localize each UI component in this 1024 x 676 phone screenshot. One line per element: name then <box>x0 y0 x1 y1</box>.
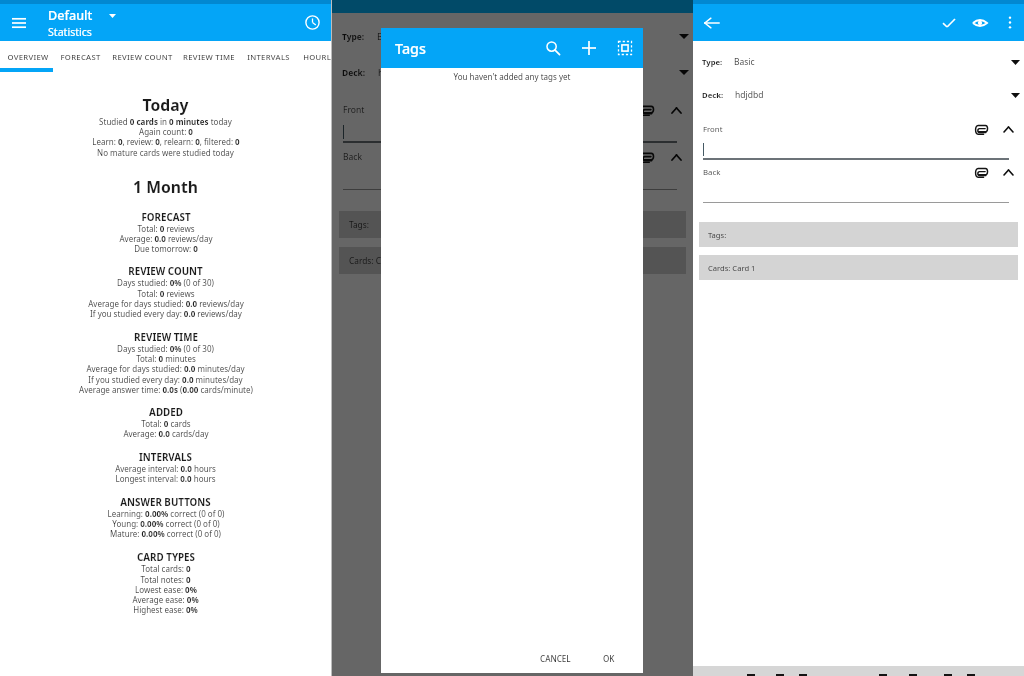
staticText: ANSWER BUTTONS <box>120 496 211 509</box>
staticText: Statistics <box>48 25 92 39</box>
button[interactable]: Attach media to Front <box>970 121 992 137</box>
staticText: hdjdbd <box>378 66 410 79</box>
staticText: Back <box>703 167 721 178</box>
staticText: hdjdbd <box>735 89 764 101</box>
staticText: 1 Month <box>133 176 198 197</box>
button[interactable] <box>332 125 693 141</box>
button[interactable]: FORECAST <box>55 41 105 72</box>
staticText: Due tomorrow: 0 <box>134 243 198 254</box>
button[interactable]: Deck: <box>332 61 693 83</box>
staticText: Total: 0 reviews <box>137 223 195 234</box>
staticText: Total: 0 reviews <box>137 288 195 299</box>
staticText: FORECAST <box>141 211 191 224</box>
button[interactable]: Collapse Back field <box>664 148 688 166</box>
staticText: Default <box>48 7 93 24</box>
button[interactable]: Type: <box>332 25 693 47</box>
staticText: Front <box>343 104 365 116</box>
staticText: Basic <box>377 30 400 43</box>
staticText: Basic <box>734 56 755 68</box>
staticText: Average answer time: 0.0s (0.00 cards/mi… <box>79 384 253 395</box>
button[interactable]: Deck: <box>693 85 1024 105</box>
button[interactable]: Type: <box>693 52 1024 72</box>
staticText: Young: 0.00% correct (0 of 0) <box>112 518 220 529</box>
staticText: Total: 0 minutes <box>136 353 196 364</box>
staticText: Average for days studied: 0.0 minutes/da… <box>86 363 245 374</box>
staticText: Days studied: 0% (0 of 30) <box>117 277 214 288</box>
staticText: Learning: 0.00% correct (0 of 0) <box>107 508 225 519</box>
staticText: Highest ease: 0% <box>133 604 198 615</box>
button[interactable]: Collapse Back field <box>997 164 1019 180</box>
staticText: OK <box>603 653 615 664</box>
staticText: Cards: Card 1 <box>708 263 756 273</box>
button[interactable]: REVIEW TIME <box>180 41 237 72</box>
staticText: Today <box>142 94 189 115</box>
button[interactable]: Attach media to Back <box>970 164 992 180</box>
button[interactable]: REVIEW COUNT <box>105 41 180 72</box>
button[interactable]: Cards: Card 1 <box>699 255 1018 280</box>
button[interactable]: Collapse Front field <box>997 121 1019 137</box>
staticText: Average interval: 0.0 hours <box>115 463 216 474</box>
staticText: Mature: 0.00% correct (0 of 0) <box>110 528 221 539</box>
staticText: Lowest ease: 0% <box>135 584 197 595</box>
staticText: Type: <box>342 31 365 42</box>
staticText: Average for days studied: 0.0 reviews/da… <box>88 298 244 309</box>
button[interactable]: Menu <box>0 4 37 41</box>
staticText: Average: 0.0 reviews/day <box>119 233 213 244</box>
staticText: Total notes: 0 <box>140 574 191 585</box>
staticText: HOURLY <box>303 52 331 62</box>
staticText: Deck: <box>342 67 366 78</box>
button[interactable]: Save note <box>933 7 964 38</box>
staticText: Learn: 0, review: 0, relearn: 0, filtere… <box>92 136 240 147</box>
staticText: Tags: <box>708 230 727 240</box>
staticText: CARD TYPES <box>137 551 195 564</box>
staticText: Again count: 0 <box>139 126 193 137</box>
staticText: Longest interval: 0.0 hours <box>115 473 216 484</box>
button[interactable]: Select all <box>607 30 643 66</box>
button[interactable]: Preview card <box>964 7 995 38</box>
staticText: Tags: <box>349 219 369 230</box>
staticText: Days studied: 0% (0 of 30) <box>117 343 214 354</box>
staticText: Average ease: 0% <box>132 594 199 605</box>
staticText: ADDED <box>149 406 183 419</box>
button[interactable]: Search tags <box>535 30 571 66</box>
staticText: Total cards: 0 <box>141 563 191 574</box>
button[interactable]: Cards: Card 1 <box>339 247 686 274</box>
staticText: REVIEW TIME <box>183 52 235 62</box>
staticText: Average: 0.0 cards/day <box>123 428 209 439</box>
button[interactable]: Tags: <box>699 222 1018 247</box>
staticText: No mature cards were studied today <box>97 147 234 158</box>
button[interactable]: Tags: <box>339 211 686 238</box>
staticText: CANCEL <box>540 653 571 664</box>
staticText: OVERVIEW <box>7 52 49 62</box>
button[interactable]: More options <box>995 8 1024 37</box>
staticText: Tags <box>395 39 426 58</box>
staticText: REVIEW TIME <box>134 331 198 344</box>
staticText: FORECAST <box>60 52 101 62</box>
staticText: REVIEW COUNT <box>112 52 173 62</box>
button[interactable]: HOURLY <box>303 41 331 72</box>
button[interactable] <box>693 143 1024 158</box>
staticText: Cards: Card 1 <box>349 255 401 266</box>
staticText: INTERVALS <box>139 451 192 464</box>
button[interactable]: OK <box>594 647 624 670</box>
button[interactable]: INTERVALS <box>237 41 300 72</box>
button[interactable]: Collapse Front field <box>664 101 688 119</box>
button[interactable]: Study time history <box>294 4 331 41</box>
staticText: INTERVALS <box>247 52 290 62</box>
button[interactable]: Add tag <box>571 30 607 66</box>
staticText: If you studied every day: 0.0 reviews/da… <box>90 308 242 319</box>
staticText: Total: 0 cards <box>141 418 191 429</box>
button[interactable]: Attach media to Back <box>635 148 659 166</box>
button[interactable]: OVERVIEW <box>0 41 55 72</box>
button[interactable] <box>332 173 693 189</box>
staticText: Front <box>703 124 723 135</box>
staticText: Back <box>343 151 362 163</box>
button[interactable]: CANCEL <box>531 647 580 670</box>
staticText: Deck: <box>702 90 724 100</box>
staticText: Studied 0 cards in 0 minutes today <box>99 116 232 127</box>
button[interactable]: Attach media to Front <box>635 101 659 119</box>
staticText: Type: <box>702 57 723 67</box>
staticText: REVIEW COUNT <box>128 265 203 278</box>
button[interactable]: Back <box>693 4 730 41</box>
